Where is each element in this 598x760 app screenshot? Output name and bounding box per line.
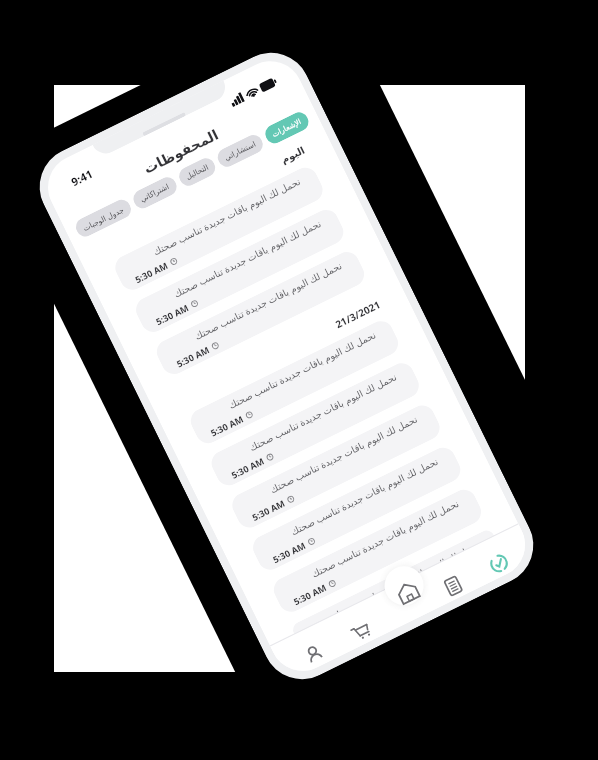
staticText: نحمل لك اليوم باقات جديدة تناسب صحتك bbox=[209, 370, 399, 473]
button[interactable]: التحاليل bbox=[176, 155, 218, 189]
button[interactable]: نحمل لك اليوم باقات جديدة تناسب صحتك bbox=[132, 205, 348, 336]
button[interactable]: نحمل لك اليوم باقات جديدة تناسب صحتك bbox=[207, 359, 423, 490]
staticText: الإشعارات bbox=[271, 117, 303, 139]
button[interactable]: استشاراتي bbox=[214, 132, 266, 170]
button[interactable]: جدول الوجبات bbox=[73, 197, 134, 240]
staticText: استشاراتي bbox=[223, 139, 257, 162]
staticText: 5:30 AM bbox=[270, 538, 308, 565]
staticText: 5:30 AM bbox=[153, 301, 191, 327]
staticText: 5:30 AM bbox=[250, 496, 287, 523]
staticText: 9:41 bbox=[69, 166, 95, 189]
button[interactable]: نحمل لك اليوم باقات جديدة تناسب صحتك bbox=[290, 528, 498, 641]
staticText: نحمل لك اليوم باقات جديدة تناسب صحتك bbox=[230, 413, 419, 515]
button[interactable]: Profile bbox=[294, 634, 333, 673]
button[interactable]: اشتراكاتي bbox=[130, 174, 180, 211]
button[interactable]: نحمل لك اليوم باقات جديدة تناسب صحتك bbox=[228, 401, 444, 532]
staticText: نحمل لك اليوم باقات جديدة تناسب صحتك bbox=[292, 539, 482, 641]
staticText: جدول الوجبات bbox=[81, 204, 126, 233]
staticText: نحمل لك اليوم باقات جديدة تناسب صحتك bbox=[271, 497, 461, 599]
button[interactable]: Cart bbox=[341, 611, 380, 650]
button[interactable]: نحمل لك اليوم باقات جديدة تناسب صحتك bbox=[249, 443, 465, 574]
button[interactable]: Home bbox=[382, 566, 434, 618]
button[interactable]: Documents bbox=[433, 566, 472, 604]
button[interactable]: Done bbox=[479, 543, 518, 582]
button[interactable]: نحمل لك اليوم باقات جديدة تناسب صحتك bbox=[186, 317, 402, 448]
staticText: نحمل لك اليوم باقات جديدة تناسب صحتك bbox=[154, 259, 344, 361]
staticText: التحاليل bbox=[184, 163, 210, 181]
staticText: المحفوظات bbox=[141, 126, 221, 177]
staticText: 5:30 AM bbox=[229, 454, 267, 481]
button[interactable]: الإشعارات bbox=[262, 109, 312, 147]
staticText: نحمل لك اليوم باقات جديدة تناسب صحتك bbox=[188, 328, 378, 430]
button[interactable]: نحمل لك اليوم باقات جديدة تناسب صحتك bbox=[111, 163, 327, 294]
button[interactable]: نحمل لك اليوم باقات جديدة تناسب صحتك bbox=[269, 485, 485, 616]
staticText: 5:30 AM bbox=[291, 581, 329, 607]
staticText: 5:30 AM bbox=[208, 412, 246, 439]
button[interactable]: نحمل لك اليوم باقات جديدة تناسب صحتك bbox=[152, 248, 368, 378]
staticText: 21/3/2021 bbox=[333, 297, 383, 331]
staticText: نحمل لك اليوم باقات جديدة تناسب صحتك bbox=[133, 217, 323, 319]
staticText: 5:30 AM bbox=[133, 259, 170, 285]
staticText: اشتراكاتي bbox=[139, 182, 171, 204]
staticText: نحمل لك اليوم باقات جديدة تناسب صحتك bbox=[250, 455, 440, 557]
staticText: اليوم bbox=[279, 144, 307, 166]
staticText: نحمل لك اليوم باقات جديدة تناسب صحتك bbox=[113, 175, 302, 277]
staticText: 5:30 AM bbox=[174, 343, 212, 370]
